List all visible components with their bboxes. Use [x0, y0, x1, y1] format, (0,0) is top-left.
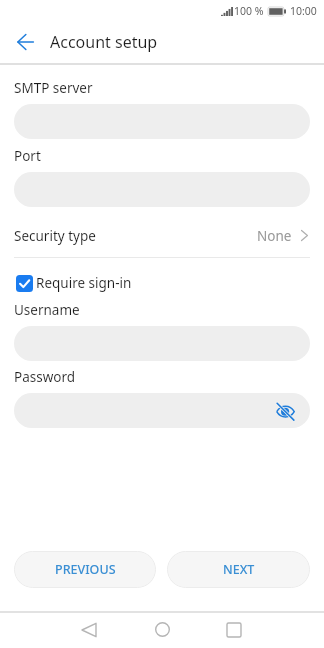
staticText: Port: [14, 147, 41, 165]
button[interactable]: PREVIOUS: [14, 551, 156, 588]
button[interactable]: Back: [69, 611, 109, 648]
button[interactable]: Security type: [0, 219, 324, 252]
button[interactable]: Back: [5, 22, 45, 62]
button[interactable]: Show password: [14, 393, 310, 428]
staticText: None: [257, 227, 292, 245]
staticText: Security type: [14, 227, 96, 245]
button[interactable]: Show password: [272, 398, 298, 424]
button[interactable]: Recents: [214, 611, 254, 648]
staticText: Username: [14, 301, 80, 319]
staticText: Password: [14, 368, 76, 386]
staticText: 10:00: [290, 4, 317, 18]
button[interactable]: Require sign-in: [0, 274, 324, 292]
button[interactable]: NEXT: [167, 551, 310, 588]
staticText: Require sign-in: [36, 274, 132, 292]
staticText: NEXT: [223, 561, 255, 578]
staticText: Account setup: [50, 31, 158, 53]
button[interactable]: Home: [142, 611, 182, 648]
staticText: PREVIOUS: [55, 561, 116, 578]
staticText: 100 %: [234, 4, 264, 18]
staticText: SMTP server: [14, 79, 93, 97]
